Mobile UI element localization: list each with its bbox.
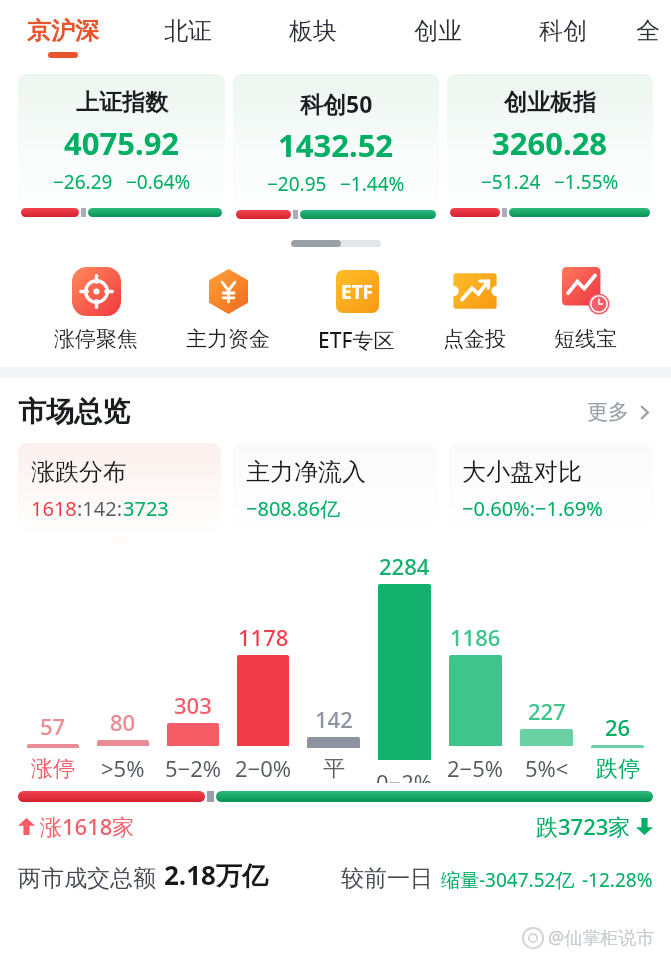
button[interactable]: 科创 (500, 0, 625, 74)
staticText: 主力资金 (186, 326, 270, 352)
other: 点金投 (451, 267, 499, 315)
staticText: 跌3723家 (536, 811, 631, 841)
button[interactable]: 板块 (250, 0, 375, 74)
staticText: 0−2% (376, 767, 433, 783)
button[interactable]: 北证 (125, 0, 250, 74)
button[interactable]: 京沪深 (0, 0, 125, 74)
staticText: 点金投 (443, 326, 506, 352)
staticText: ETF专区 (318, 326, 395, 355)
button[interactable]: 涨停聚焦 (50, 265, 142, 352)
button[interactable]: 点金投 (439, 265, 510, 352)
other: 涨停聚焦 (72, 267, 121, 316)
staticText: 5%< (525, 753, 569, 783)
staticText: 2284 (379, 551, 430, 581)
staticText: −26.29 (53, 169, 113, 195)
staticText: -12.28% (582, 867, 653, 893)
other: 短线宝 (562, 267, 610, 315)
staticText: −20.95 (267, 171, 327, 197)
staticText: 2−0% (235, 753, 292, 783)
staticText: 主力净流入 (246, 457, 366, 487)
button[interactable]: 主力净流入 (233, 443, 437, 536)
button[interactable]: 大小盘对比 (449, 443, 653, 536)
staticText: 创业 (414, 16, 462, 46)
button[interactable]: 主力资金 (182, 265, 274, 352)
staticText: 3723 (123, 495, 169, 522)
staticText: 4075.92 (64, 122, 180, 164)
staticText: −0.64% (126, 169, 191, 195)
staticText: 涨跌分布 (31, 457, 127, 487)
staticText: −51.24 (481, 169, 541, 195)
staticText: 更多 (587, 399, 629, 425)
button[interactable]: 创业 (375, 0, 500, 74)
staticText: ETF (341, 279, 374, 305)
staticText: −1.44% (340, 171, 405, 197)
staticText: 26 (605, 712, 631, 742)
staticText: 创业板指 (504, 88, 596, 117)
staticText: 1618 (31, 495, 77, 522)
staticText: 1178 (238, 622, 289, 652)
staticText: 科创 (539, 16, 587, 46)
button[interactable]: 上证指数 (18, 74, 225, 226)
button[interactable]: 全 (625, 0, 671, 74)
staticText: −1.55% (554, 169, 619, 195)
staticText: 较前一日 (341, 864, 433, 893)
button[interactable]: 涨跌分布 (18, 443, 221, 536)
button[interactable]: 短线宝 (550, 265, 621, 352)
staticText: 平 (323, 755, 345, 783)
staticText: 2.18万亿 (164, 857, 268, 893)
staticText: 跌停 (596, 755, 640, 783)
staticText: 227 (528, 696, 566, 726)
button[interactable]: ETF专区 (314, 265, 399, 355)
staticText: >5% (101, 753, 145, 783)
staticText: 1186 (450, 622, 501, 652)
staticText: 京沪深 (27, 16, 99, 46)
staticText: 市场总览 (18, 394, 130, 429)
staticText: 大小盘对比 (462, 457, 582, 487)
other: 主力资金 (204, 267, 253, 316)
staticText: 北证 (164, 16, 212, 46)
staticText: 上证指数 (76, 88, 168, 117)
staticText: 1432.52 (278, 124, 394, 166)
other: ETF专区 (336, 270, 379, 313)
staticText: 涨停 (31, 755, 75, 783)
staticText: 2−5% (447, 753, 504, 783)
button[interactable]: 创业板指 (447, 74, 653, 226)
staticText: :142: (77, 495, 123, 522)
staticText: 短线宝 (554, 326, 617, 352)
staticText: 142 (315, 704, 353, 734)
staticText: 5−2% (165, 753, 222, 783)
staticText: 全 (636, 16, 660, 46)
staticText: 缩量-3047.52亿 (441, 867, 575, 893)
staticText: @仙掌柜说市 (548, 925, 655, 950)
staticText: −808.86亿 (246, 495, 340, 522)
staticText: 涨1618家 (40, 811, 135, 841)
button[interactable]: 科创50 (233, 74, 439, 228)
button[interactable]: 更多 (587, 399, 653, 425)
staticText: 板块 (289, 16, 337, 46)
staticText: 57 (40, 711, 66, 741)
staticText: 两市成交总额 (18, 864, 156, 893)
staticText: 80 (110, 707, 136, 737)
staticText: 科创50 (300, 88, 373, 119)
staticText: −0.60%:−1.69% (462, 495, 603, 522)
staticText: 3260.28 (492, 122, 608, 164)
staticText: 303 (174, 690, 212, 720)
staticText: 涨停聚焦 (54, 326, 138, 352)
